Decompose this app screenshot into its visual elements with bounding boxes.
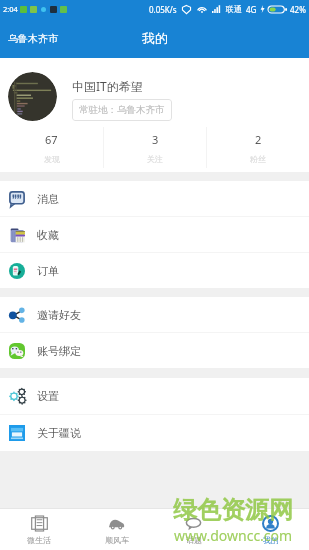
staticText: 消息 xyxy=(37,192,59,206)
staticText: 微生活 xyxy=(27,535,51,545)
button[interactable]: 订单 xyxy=(0,253,309,288)
staticText: 常驻地：乌鲁木齐市 xyxy=(79,104,165,116)
staticText: 3 xyxy=(152,132,159,147)
staticText: 0.05K/s xyxy=(149,4,177,15)
button[interactable]: 消息 xyxy=(0,181,309,216)
staticText: www.downcc.com xyxy=(174,526,293,545)
button[interactable]: 关于疆说 xyxy=(0,415,309,451)
staticText: 关注 xyxy=(147,154,163,164)
staticText: 订单 xyxy=(37,264,59,278)
button[interactable]: 话题 xyxy=(155,509,232,550)
staticText: 发现 xyxy=(44,154,60,164)
button[interactable]: 收藏 xyxy=(0,217,309,252)
button[interactable]: 邀请好友 xyxy=(0,297,309,332)
staticText: 关于疆说 xyxy=(37,426,81,440)
staticText: 收藏 xyxy=(37,228,59,242)
staticText: 账号绑定 xyxy=(37,344,81,358)
button[interactable]: 设置 xyxy=(0,378,309,414)
button[interactable]: 微生活 xyxy=(0,509,78,550)
button[interactable]: 乌鲁木齐市 xyxy=(0,18,68,58)
staticText: 4G xyxy=(246,4,257,15)
staticText: 联通 xyxy=(226,4,242,14)
staticText: 绿色资源网 xyxy=(173,495,293,525)
button[interactable]: 账号绑定 xyxy=(0,333,309,368)
button[interactable]: 67 xyxy=(0,124,103,172)
staticText: 我的 xyxy=(263,535,279,545)
button[interactable]: 中国IT的希望 xyxy=(0,58,309,124)
staticText: 邀请好友 xyxy=(37,308,81,322)
staticText: 乌鲁木齐市 xyxy=(8,32,58,45)
button[interactable]: 我的 xyxy=(232,509,309,550)
staticText: 2:04 xyxy=(3,4,18,14)
button[interactable]: 顺风车 xyxy=(78,509,155,550)
staticText: 顺风车 xyxy=(105,535,129,545)
staticText: 设置 xyxy=(37,389,59,403)
staticText: 2 xyxy=(255,132,262,147)
staticText: 粉丝 xyxy=(250,154,266,164)
button[interactable]: 2 xyxy=(207,124,309,172)
staticText: 话题 xyxy=(186,535,202,545)
staticText: 我的 xyxy=(142,30,168,46)
button[interactable]: 3 xyxy=(104,124,206,172)
staticText: 中国IT的希望 xyxy=(72,78,143,94)
staticText: 42% xyxy=(290,4,306,15)
staticText: 67 xyxy=(45,132,58,147)
